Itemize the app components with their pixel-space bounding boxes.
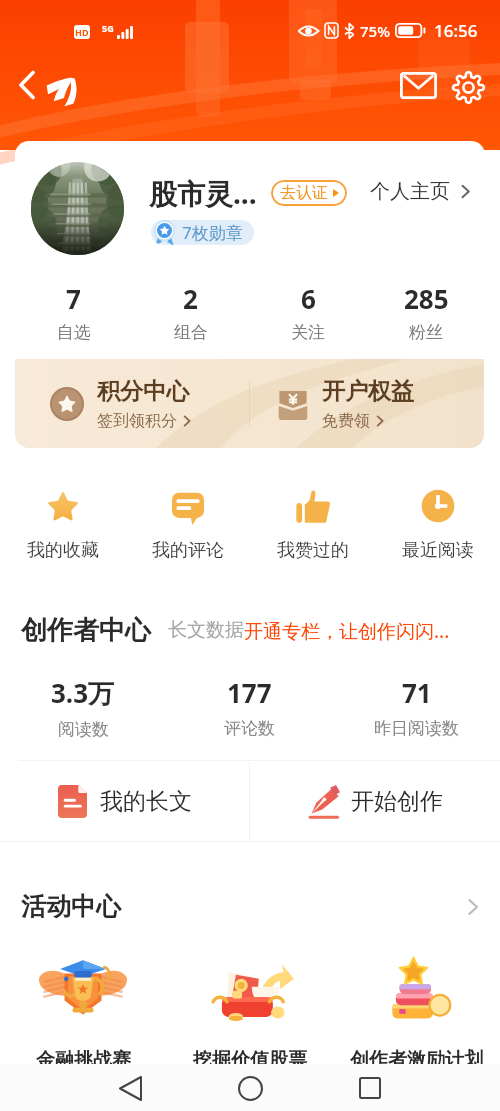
button[interactable]: 长文数据	[168, 618, 450, 644]
staticText: 开户权益	[322, 377, 414, 406]
staticText: 关注	[291, 322, 325, 343]
staticText: 7	[66, 281, 81, 316]
staticText: 活动中心	[21, 891, 121, 922]
staticText: 粉丝	[409, 322, 443, 343]
button[interactable]: 金融挑战赛	[0, 959, 166, 1072]
button[interactable]: 3.3万	[0, 675, 166, 740]
button[interactable]: 挖掘价值股票	[166, 959, 333, 1072]
button[interactable]: Settings	[444, 63, 492, 111]
staticText: 开始创作	[351, 787, 443, 816]
staticText: 7枚勋章	[182, 221, 243, 244]
staticText: 5G	[102, 22, 114, 34]
staticText: 自选	[57, 322, 91, 343]
button[interactable]: 积分中心	[15, 359, 249, 448]
button[interactable]: 71	[333, 675, 500, 739]
button[interactable]: Messages	[394, 61, 442, 109]
button[interactable]: Home	[228, 1066, 272, 1110]
staticText: 挖掘价值股票	[193, 1048, 307, 1072]
staticText: 长文数据	[168, 618, 244, 642]
staticText: 2	[183, 281, 198, 316]
button[interactable]: 个人主页	[366, 175, 477, 208]
staticText: 昨日阅读数	[374, 718, 459, 739]
staticText: 71	[402, 675, 432, 710]
staticText: 去认证	[280, 183, 328, 203]
button[interactable]: 创作者激励计划	[333, 959, 500, 1072]
staticText: 金融挑战赛	[36, 1048, 131, 1072]
staticText: 6	[301, 281, 316, 316]
staticText: 阅读数	[58, 719, 109, 740]
button[interactable]: 我的长文	[0, 761, 249, 841]
staticText: 免费领	[322, 411, 370, 431]
button[interactable]: 285	[367, 281, 485, 343]
button[interactable]: 我的评论	[125, 484, 250, 567]
button[interactable]: 7枚勋章	[151, 220, 254, 245]
button[interactable]: 开始创作	[250, 761, 500, 841]
button[interactable]: Back	[108, 1066, 152, 1110]
staticText: 组合	[174, 322, 208, 343]
button[interactable]: Recent apps	[348, 1066, 392, 1110]
button[interactable]: 2	[132, 281, 249, 343]
staticText: 我的长文	[100, 787, 192, 816]
staticText: 75%	[360, 21, 390, 41]
staticText: 股市灵...	[149, 174, 257, 212]
button[interactable]: 最近阅读	[375, 484, 500, 567]
staticText: 285	[404, 281, 449, 316]
staticText: 177	[227, 675, 272, 710]
staticText: 个人主页	[370, 179, 450, 204]
staticText: 16:56	[434, 19, 478, 42]
staticText: HD	[75, 26, 89, 38]
staticText: 评论数	[224, 718, 275, 739]
button[interactable]: 我的收藏	[0, 484, 125, 567]
staticText: 签到领积分	[97, 411, 177, 431]
button[interactable]: 177	[166, 675, 333, 739]
staticText: 开通专栏，让创作闪闪...	[244, 618, 450, 644]
staticText: 创作者激励计划	[350, 1048, 483, 1072]
button[interactable]: 活动中心	[0, 884, 500, 922]
staticText: 我的评论	[152, 539, 224, 562]
staticText: 我赞过的	[277, 539, 349, 562]
staticText: 最近阅读	[402, 539, 474, 562]
button[interactable]: Back	[6, 64, 48, 106]
button[interactable]: 7	[15, 281, 132, 343]
button[interactable]: 6	[249, 281, 367, 343]
button[interactable]: 开户权益	[250, 359, 484, 448]
staticText: 创作者中心	[21, 614, 151, 647]
button[interactable]: 去认证	[271, 180, 347, 206]
button[interactable]: 我赞过的	[250, 484, 375, 567]
staticText: 3.3万	[51, 675, 115, 711]
staticText: 积分中心	[97, 377, 189, 406]
staticText: 我的收藏	[27, 539, 99, 562]
button[interactable]: Profile photo	[31, 162, 124, 255]
